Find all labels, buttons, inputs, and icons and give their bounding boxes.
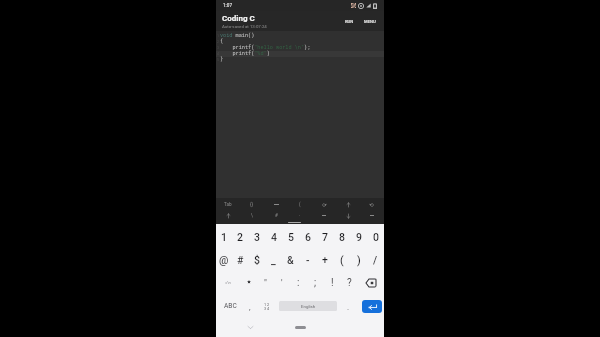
- staticText: /: [373, 254, 378, 266]
- button[interactable]: English: [279, 301, 337, 311]
- button[interactable]: Undo: [312, 199, 336, 210]
- staticText: ·: [299, 213, 301, 218]
- button[interactable]: 6: [299, 225, 316, 248]
- staticText: void main(): [220, 32, 255, 38]
- staticText: .: [347, 303, 350, 312]
- staticText: :: [297, 277, 300, 289]
- staticText: ;: [314, 277, 317, 289]
- button[interactable]: &: [282, 248, 299, 271]
- button[interactable]: Hide keyboard: [216, 317, 253, 337]
- button[interactable]: $: [248, 248, 265, 271]
- button[interactable]: Redo: [360, 199, 384, 210]
- button[interactable]: Move up: [336, 199, 360, 210]
- button[interactable]: Minus: [360, 210, 384, 221]
- button[interactable]: More symbols: [216, 271, 241, 294]
- staticText: 0: [373, 231, 379, 243]
- button[interactable]: ,: [244, 294, 255, 317]
- staticText: 3: [254, 231, 260, 243]
- button[interactable]: Dash: [264, 199, 288, 210]
- staticText: 5: [288, 231, 294, 243]
- button[interactable]: ': [273, 271, 290, 294]
- button[interactable]: 3: [248, 225, 265, 248]
- button[interactable]: 2: [232, 225, 248, 248]
- staticText: &: [287, 254, 294, 266]
- staticText: 9: [356, 231, 362, 243]
- button[interactable]: RUN: [342, 16, 357, 27]
- button[interactable]: Backslash: [240, 210, 264, 221]
- staticText: English: [301, 304, 316, 309]
- button[interactable]: MENU: [361, 16, 379, 27]
- staticText: {}: [250, 202, 254, 207]
- staticText: \: [251, 213, 253, 218]
- button[interactable]: Backspace: [358, 271, 384, 294]
- staticText: ": [264, 278, 267, 289]
- staticText: ': [281, 278, 283, 289]
- button[interactable]: Number pad: [255, 294, 279, 317]
- staticText: RUN: [345, 19, 354, 24]
- staticText: @: [219, 254, 229, 266]
- button[interactable]: 9: [350, 225, 367, 248]
- staticText: 6: [305, 231, 311, 243]
- button[interactable]: Up: [216, 210, 240, 221]
- button[interactable]: 7: [316, 225, 333, 248]
- button[interactable]: +: [316, 248, 333, 271]
- staticText: Coding C: [222, 14, 255, 23]
- staticText: (: [299, 202, 301, 207]
- staticText: 1 2: [264, 302, 270, 306]
- button[interactable]: _: [265, 248, 282, 271]
- button[interactable]: 1: [216, 225, 232, 248]
- button[interactable]: ABC: [216, 294, 244, 317]
- staticText: 3: [217, 45, 220, 50]
- staticText: 3 4: [264, 306, 270, 310]
- staticText: 4: [217, 51, 220, 56]
- button[interactable]: /: [367, 248, 384, 271]
- staticText: 2: [237, 231, 243, 243]
- staticText: printf("hello world \n");: [220, 44, 311, 50]
- button[interactable]: 0: [367, 225, 384, 248]
- button[interactable]: Parenthesis: [288, 199, 312, 210]
- staticText: 8: [339, 231, 345, 243]
- button[interactable]: Braces: [240, 199, 264, 210]
- staticText: printf("%d"): [220, 50, 270, 56]
- button[interactable]: :: [290, 271, 307, 294]
- button[interactable]: Minus: [312, 210, 336, 221]
- button[interactable]: 8: [333, 225, 350, 248]
- staticText: ABC: [224, 302, 237, 310]
- staticText: ): [357, 254, 361, 266]
- staticText: 2: [217, 39, 220, 44]
- button[interactable]: Hash: [264, 210, 288, 221]
- button[interactable]: Tab: [216, 199, 240, 210]
- staticText: }: [220, 56, 224, 62]
- button[interactable]: ): [350, 248, 367, 271]
- button[interactable]: Enter: [362, 300, 382, 313]
- button[interactable]: @: [216, 248, 232, 271]
- staticText: (: [340, 254, 344, 266]
- button[interactable]: (: [333, 248, 350, 271]
- staticText: 4: [271, 231, 277, 243]
- button[interactable]: 5: [282, 225, 299, 248]
- staticText: =\<: [225, 280, 232, 285]
- staticText: #: [275, 213, 278, 218]
- button[interactable]: -: [299, 248, 316, 271]
- staticText: 1:07: [223, 3, 233, 8]
- button[interactable]: ;: [307, 271, 324, 294]
- button[interactable]: ": [257, 271, 273, 294]
- staticText: +: [322, 254, 328, 266]
- button[interactable]: #: [232, 248, 248, 271]
- staticText: _: [271, 254, 276, 266]
- staticText: !: [331, 277, 334, 289]
- staticText: Tab: [224, 202, 232, 207]
- staticText: ?: [347, 277, 352, 289]
- button[interactable]: Move down: [336, 210, 360, 221]
- staticText: 5: [217, 57, 220, 62]
- staticText: #: [237, 254, 244, 266]
- button[interactable]: 4: [265, 225, 282, 248]
- button[interactable]: ?: [341, 271, 358, 294]
- button[interactable]: [241, 271, 257, 294]
- button[interactable]: !: [324, 271, 341, 294]
- staticText: Auto-saved at 13:07:24: [222, 24, 267, 29]
- staticText: -: [306, 254, 310, 266]
